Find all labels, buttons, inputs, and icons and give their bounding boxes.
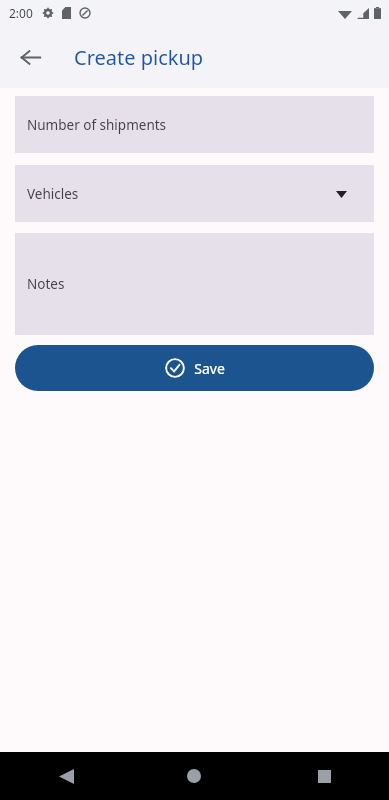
button[interactable]: Recent apps bbox=[259, 752, 389, 800]
staticText: 2:00 bbox=[9, 5, 33, 21]
staticText: Vehicles bbox=[27, 185, 79, 203]
button[interactable]: Back bbox=[0, 752, 129, 800]
staticText: Notes bbox=[27, 275, 65, 293]
staticText: Save bbox=[194, 359, 225, 378]
button[interactable]: Home bbox=[129, 752, 259, 800]
other: Open dropdown bbox=[334, 187, 348, 201]
button[interactable]: Notes bbox=[15, 233, 374, 335]
button[interactable]: Back bbox=[8, 35, 52, 79]
button[interactable]: Vehicles bbox=[15, 165, 374, 222]
staticText: Number of shipments bbox=[27, 116, 167, 134]
button[interactable]: Number of shipments bbox=[15, 96, 374, 153]
staticText: Create pickup bbox=[74, 44, 204, 71]
button[interactable]: Save bbox=[15, 345, 374, 391]
